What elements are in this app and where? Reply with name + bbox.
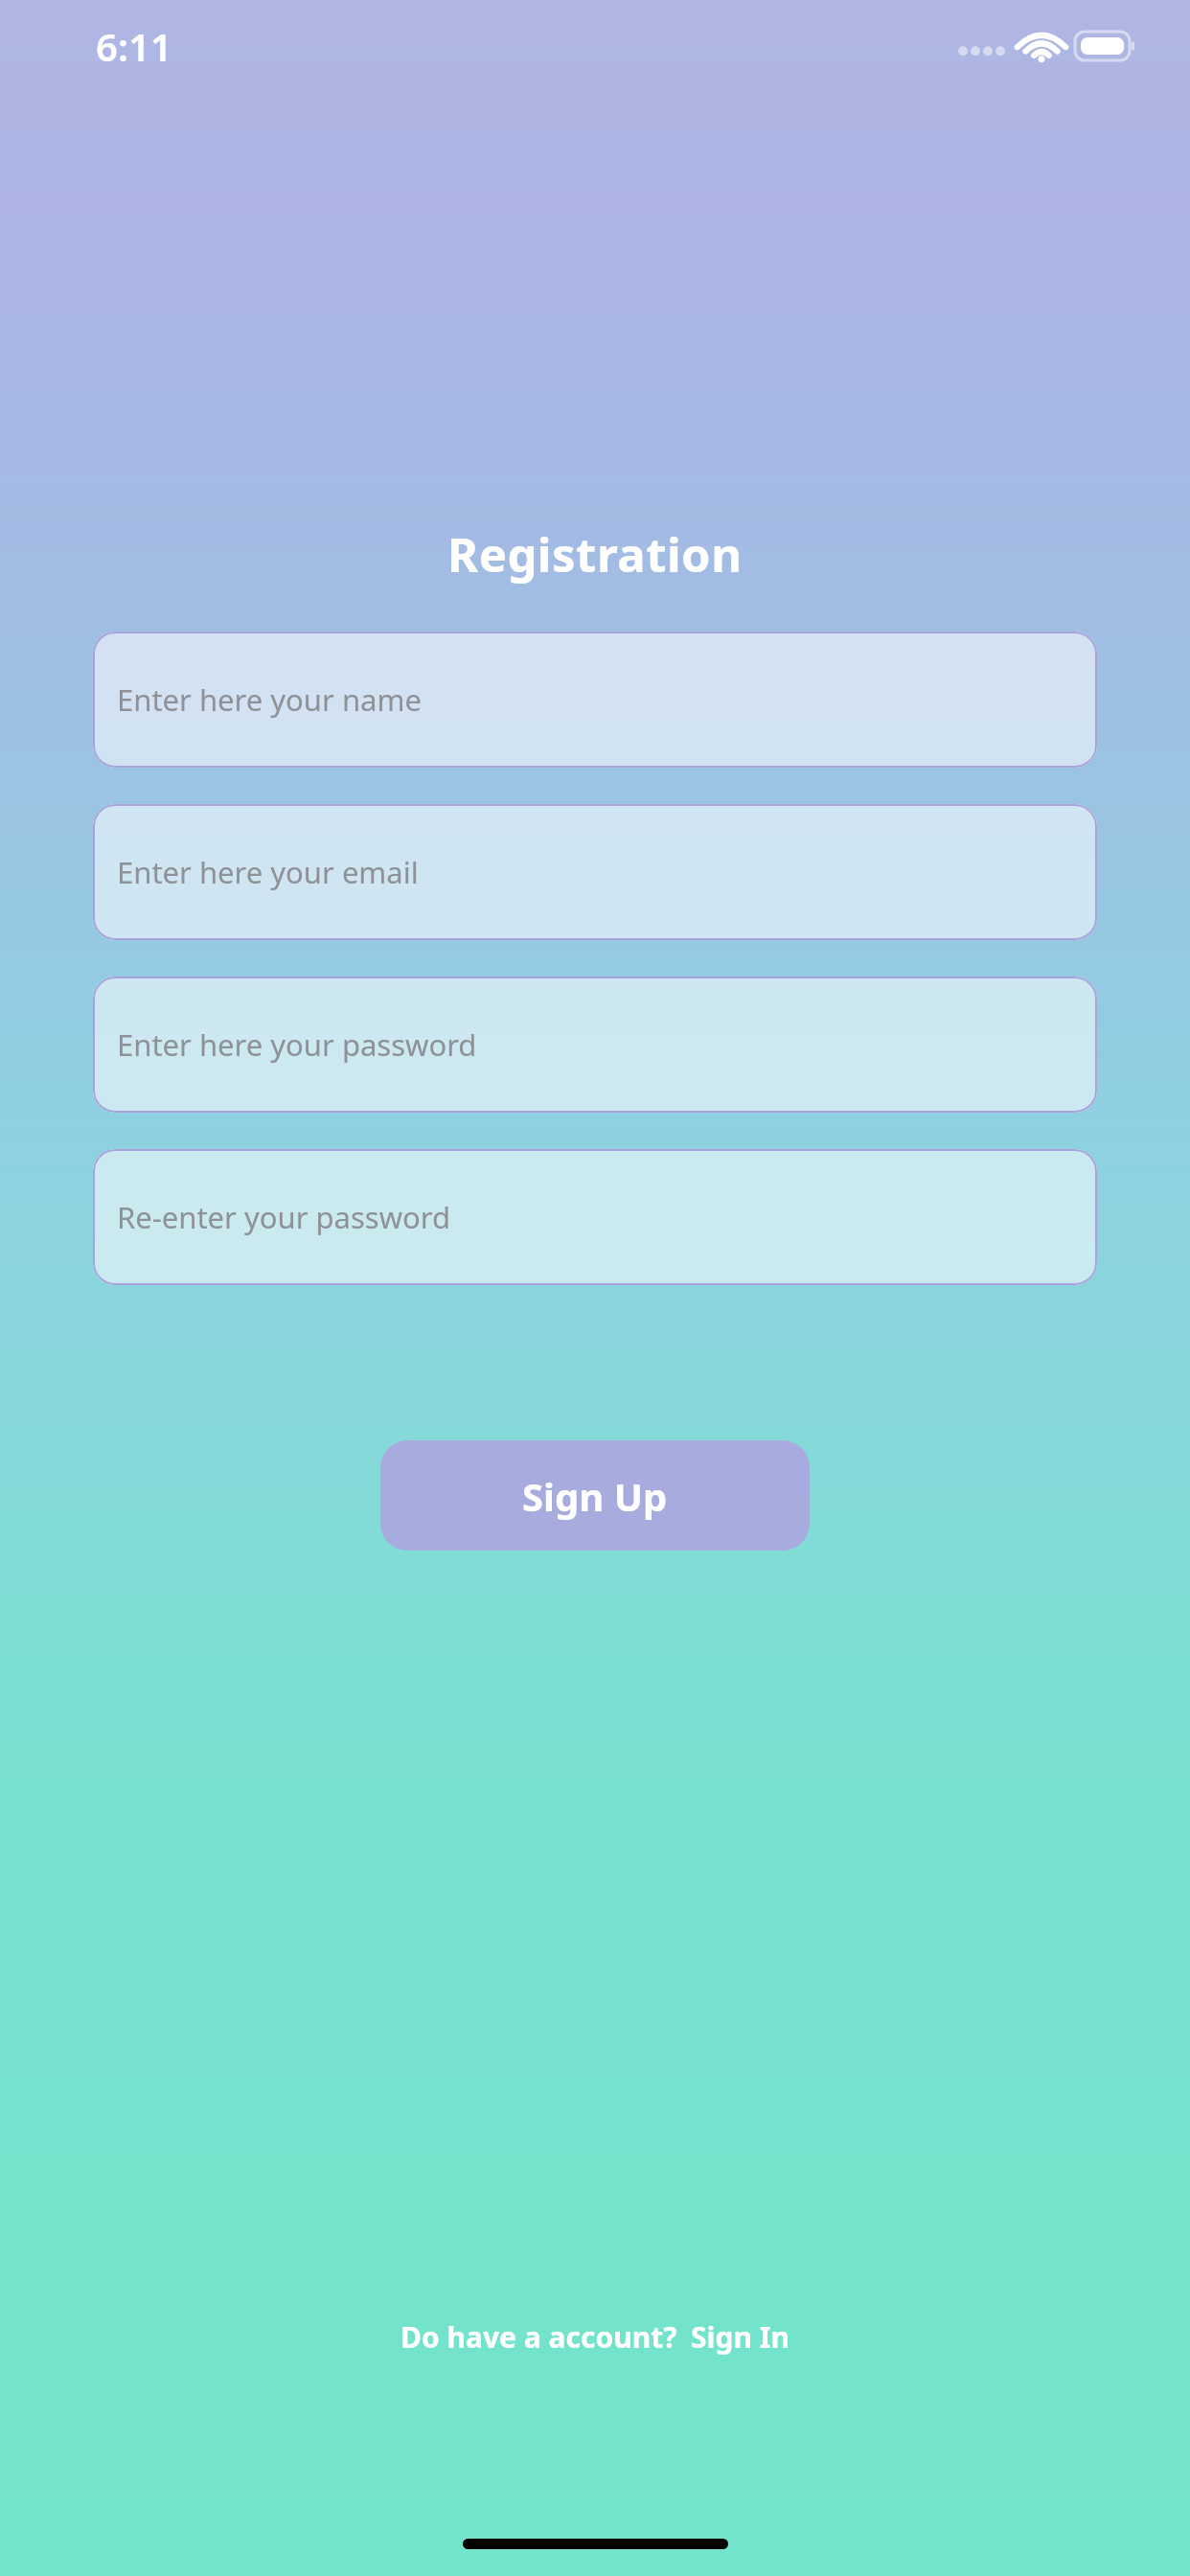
button[interactable]: Do have a account? <box>391 2310 799 2364</box>
staticText: Enter here your email <box>117 852 419 892</box>
staticText: 6:11 <box>96 20 172 72</box>
staticText: Sign In <box>691 2317 790 2357</box>
staticText: Do have a account? <box>400 2317 677 2357</box>
staticText: Enter here your name <box>117 679 422 720</box>
button[interactable]: Enter here your name <box>93 632 1097 768</box>
staticText: Enter here your password <box>117 1024 477 1065</box>
button[interactable]: Enter here your password <box>93 977 1097 1113</box>
staticText: Sign Up <box>522 1470 668 1522</box>
button[interactable]: Enter here your email <box>93 804 1097 940</box>
staticText: Registration <box>447 522 743 586</box>
button[interactable]: Re-enter your password <box>93 1149 1097 1285</box>
button[interactable]: Sign Up <box>380 1440 810 1551</box>
staticText: Re-enter your password <box>117 1197 451 1237</box>
